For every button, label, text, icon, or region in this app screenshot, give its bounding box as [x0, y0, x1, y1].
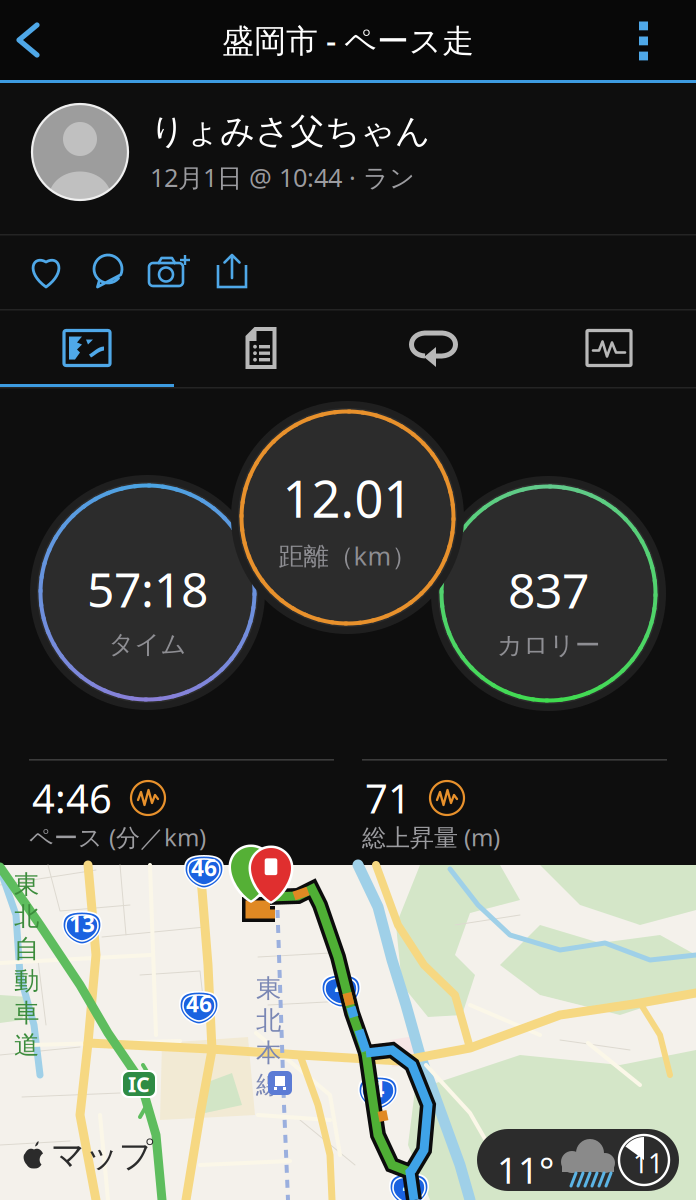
- staticText: マップ: [51, 1135, 153, 1176]
- staticText: 4:46: [32, 771, 112, 824]
- staticText: 道: [14, 1030, 39, 1061]
- button[interactable]: Comment: [77, 235, 139, 307]
- staticText: 距離（km）: [278, 539, 416, 572]
- button[interactable]: Back: [0, 0, 76, 80]
- staticText: 総上昇量 (m): [362, 821, 500, 853]
- staticText: 自: [14, 933, 39, 964]
- staticText: 盛岡市 - ペース走: [222, 19, 474, 61]
- staticText: 71: [365, 771, 411, 824]
- staticText: 837: [508, 558, 589, 622]
- staticText: 4: [334, 971, 347, 1002]
- staticText: 4: [371, 1073, 384, 1104]
- staticText: 本: [256, 1037, 281, 1068]
- staticText: 東: [256, 973, 281, 1004]
- button[interactable]: Laps: [348, 311, 522, 385]
- button[interactable]: Graphs: [522, 311, 696, 385]
- staticText: 線: [256, 1069, 281, 1100]
- staticText: 車: [14, 997, 39, 1029]
- staticText: 57:18: [87, 557, 208, 621]
- staticText: 11: [633, 1145, 663, 1181]
- staticText: 北: [256, 1005, 281, 1036]
- staticText: 北: [14, 901, 39, 932]
- staticText: 11°: [497, 1146, 554, 1194]
- staticText: ペース (分／km): [29, 821, 206, 853]
- staticText: 東: [14, 869, 39, 900]
- staticText: カロリー: [497, 630, 600, 661]
- button[interactable]: Share: [201, 235, 263, 307]
- staticText: 13: [69, 908, 95, 939]
- button[interactable]: Splits: [174, 311, 348, 385]
- staticText: タイム: [108, 629, 186, 660]
- staticText: 4: [402, 1170, 415, 1200]
- staticText: IC: [128, 1070, 150, 1098]
- staticText: 12.01: [282, 464, 412, 532]
- button[interactable]: Map: [0, 311, 174, 385]
- staticText: 動: [14, 965, 39, 996]
- staticText: 46: [191, 852, 217, 883]
- button[interactable]: Add photo: [139, 235, 201, 307]
- button[interactable]: Like: [15, 235, 77, 307]
- button[interactable]: More options: [617, 0, 679, 80]
- staticText: 12月1日 @ 10:44 · ラン: [150, 160, 415, 194]
- staticText: 46: [186, 988, 212, 1019]
- staticText: りょみさ父ちゃん: [150, 110, 430, 152]
